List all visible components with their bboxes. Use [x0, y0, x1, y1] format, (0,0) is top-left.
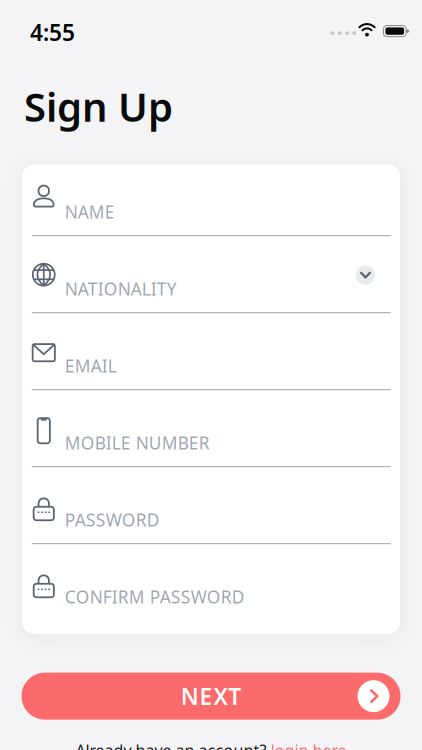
button[interactable]: login here — [270, 740, 346, 750]
staticText: EMAIL — [65, 354, 117, 377]
staticText: NATIONALITY — [65, 277, 177, 300]
staticText: NEXT — [181, 681, 241, 711]
staticText: CONFIRM PASSWORD — [65, 585, 245, 608]
staticText: Sign Up — [24, 80, 173, 133]
staticText: MOBILE NUMBER — [65, 431, 210, 454]
staticText: PASSWORD — [65, 508, 160, 531]
button[interactable] — [356, 265, 375, 285]
staticText: 4:55 — [30, 17, 75, 47]
staticText: Already have an account? — [75, 740, 266, 750]
button[interactable]: NEXT — [21, 673, 400, 720]
staticText: NAME — [65, 200, 115, 223]
staticText: login here — [270, 740, 346, 750]
